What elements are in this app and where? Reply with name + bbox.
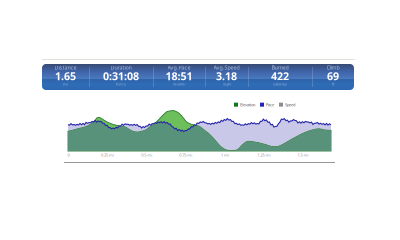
staticText: 0 [67,152,69,158]
staticText: Elevation [240,102,255,107]
staticText: Pace [266,102,274,107]
staticText: h:m:s [116,81,126,87]
staticText: Avg. Speed [213,64,239,71]
staticText: 3.18 [216,69,237,83]
staticText: Duration [110,64,131,71]
staticText: Distance [54,64,76,71]
staticText: Speed [285,102,295,107]
staticText: Avg. Pace [167,64,190,71]
staticText: 0:31:08 [103,69,139,83]
staticText: min/mi [172,81,185,87]
staticText: 422 [271,69,289,83]
staticText: 1.25 mi [257,152,270,158]
staticText: 1.5 mi [298,152,309,158]
staticText: 0.75 mi [179,152,192,158]
staticText: Burned [271,64,288,71]
staticText: Climb [326,64,339,71]
staticText: 0.25 mi [101,152,114,158]
staticText: 69 [327,69,339,83]
button[interactable]: Distance [42,64,354,90]
staticText: 18:51 [165,69,192,83]
staticText: calories [273,81,287,87]
staticText: 1.65 [55,69,76,83]
staticText: 0.5 mi [141,152,152,158]
staticText: mph [222,81,230,87]
staticText: 1 mi [221,152,229,158]
staticText: ft [332,81,334,87]
staticText: mi [63,81,68,87]
